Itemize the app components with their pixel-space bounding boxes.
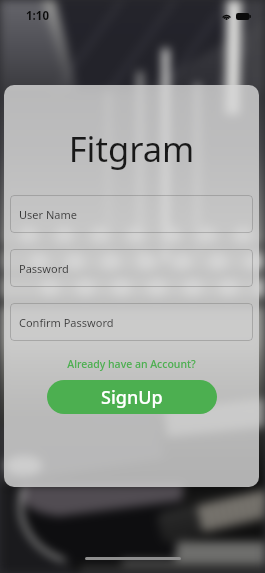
staticText: Fitgram <box>4 125 259 172</box>
button[interactable]: Confirm Password <box>10 303 253 341</box>
staticText: SignUp <box>101 385 163 410</box>
staticText: Confirm Password <box>19 315 114 330</box>
staticText: User Name <box>19 207 77 222</box>
button[interactable]: SignUp <box>47 380 217 414</box>
button[interactable]: Already have an Account? <box>4 357 259 371</box>
button[interactable]: User Name <box>10 195 253 233</box>
staticText: 1:10 <box>26 8 49 24</box>
staticText: Password <box>19 261 69 276</box>
button[interactable]: Password <box>10 249 253 287</box>
